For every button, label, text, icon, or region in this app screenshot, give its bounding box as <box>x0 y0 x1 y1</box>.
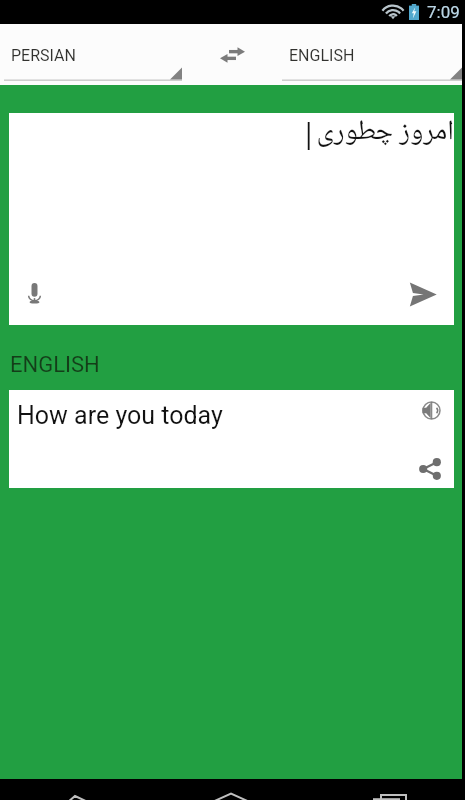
button[interactable]: Swap languages <box>182 24 282 85</box>
staticText: ENGLISH <box>289 46 355 65</box>
staticText: ENGLISH <box>10 352 100 378</box>
button[interactable]: Translate <box>394 265 452 323</box>
button[interactable]: Share <box>413 452 447 486</box>
button[interactable]: Back <box>0 779 154 800</box>
staticText: How are you today <box>17 401 223 430</box>
staticText: امروز چطوری| <box>301 113 454 151</box>
button[interactable]: Listen <box>414 393 448 427</box>
button[interactable]: Voice input <box>9 268 59 318</box>
button[interactable]: ENGLISH <box>282 24 462 85</box>
button[interactable]: Home <box>154 779 308 800</box>
button[interactable]: Recents <box>308 779 462 800</box>
button[interactable]: PERSIAN <box>0 24 182 85</box>
staticText: PERSIAN <box>11 46 76 65</box>
staticText: 7:09 <box>427 2 460 22</box>
